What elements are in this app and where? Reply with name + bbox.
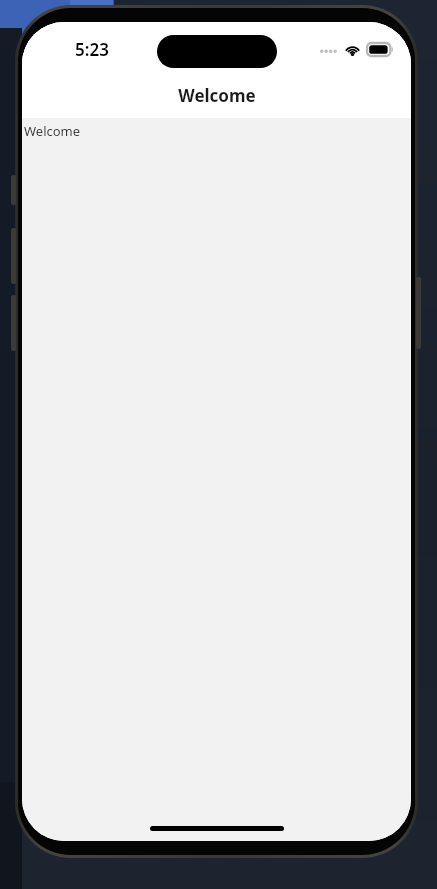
staticText: Welcome <box>178 84 256 107</box>
button[interactable]: Welcome <box>22 74 411 118</box>
other: Home indicator <box>150 826 284 831</box>
other: Silent switch <box>11 175 16 205</box>
staticText: 5:23 <box>75 38 109 61</box>
other: Dynamic Island <box>157 35 277 68</box>
staticText: Welcome <box>24 122 81 140</box>
